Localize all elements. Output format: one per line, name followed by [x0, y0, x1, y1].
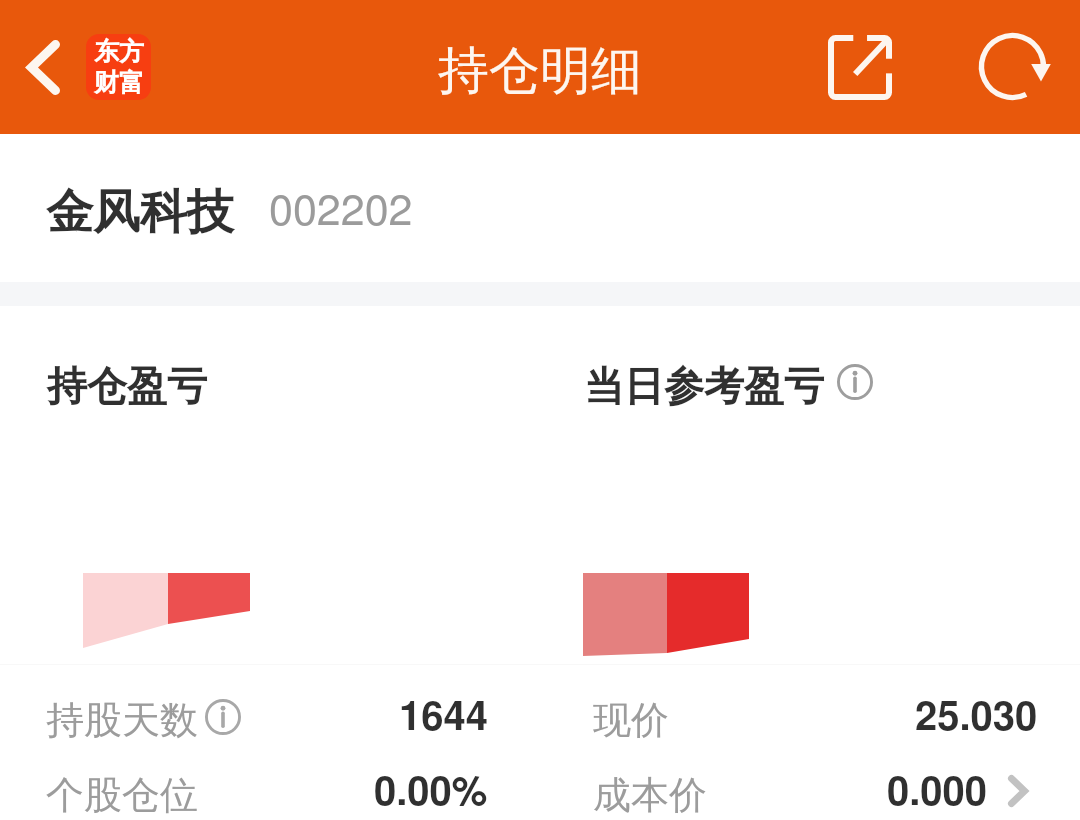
button[interactable]: Share: [808, 15, 911, 119]
staticText: 持仓明细: [438, 39, 642, 103]
button[interactable]: Back: [0, 22, 86, 112]
staticText: 个股仓位: [46, 771, 198, 819]
staticText: 金风科技: [46, 183, 234, 242]
button[interactable]: About today's reference profit: [823, 350, 887, 414]
staticText: 0.00%: [374, 760, 488, 817]
button[interactable]: 个股仓位: [0, 757, 540, 820]
staticText: 002202: [269, 176, 413, 238]
staticText: 成本价: [593, 771, 707, 819]
staticText: 当日参考盈亏: [584, 361, 824, 411]
staticText: 1644: [399, 685, 488, 742]
staticText: 现价: [593, 696, 669, 744]
staticText: 持股天数: [46, 696, 198, 744]
button[interactable]: East Money: [86, 34, 151, 100]
button[interactable]: 成本价: [540, 757, 1080, 820]
staticText: 东方: [94, 36, 144, 67]
staticText: 25.030: [915, 685, 1038, 742]
staticText: 0.000: [887, 760, 988, 817]
button[interactable]: 现价: [540, 682, 1080, 757]
staticText: 财富: [94, 67, 144, 98]
button[interactable]: Refresh: [959, 16, 1061, 118]
button[interactable]: 持股天数: [0, 682, 540, 757]
staticText: 持仓盈亏: [47, 361, 207, 411]
